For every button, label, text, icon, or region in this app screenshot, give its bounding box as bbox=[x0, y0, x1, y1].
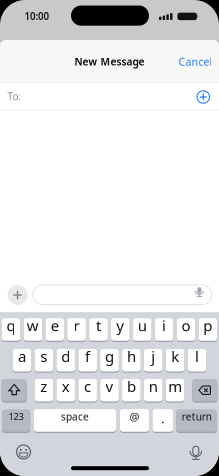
staticText: g bbox=[105, 346, 114, 366]
button[interactable]: b bbox=[120, 377, 143, 403]
staticText: e bbox=[51, 315, 59, 336]
staticText: t bbox=[96, 315, 101, 336]
staticText: Cancel bbox=[178, 54, 212, 69]
button[interactable]: return bbox=[174, 407, 219, 434]
staticText: y bbox=[116, 315, 124, 336]
button[interactable]: w bbox=[21, 316, 44, 343]
staticText: w bbox=[27, 315, 39, 336]
button[interactable]: v bbox=[98, 377, 121, 403]
staticText: return bbox=[182, 410, 212, 423]
staticText: f bbox=[85, 346, 90, 366]
staticText: h bbox=[127, 346, 136, 366]
staticText: New Message bbox=[74, 55, 144, 69]
button[interactable]: i bbox=[153, 316, 175, 343]
button[interactable]: Shift bbox=[0, 377, 29, 403]
staticText: 10:00 bbox=[24, 10, 49, 23]
button[interactable]: Apps bbox=[7, 284, 28, 305]
staticText: l bbox=[195, 346, 199, 366]
button[interactable]: y bbox=[109, 316, 132, 343]
button[interactable]: x bbox=[54, 377, 77, 403]
staticText: v bbox=[105, 376, 113, 396]
button[interactable]: t bbox=[87, 316, 110, 343]
button[interactable]: l bbox=[186, 347, 208, 374]
staticText: @ bbox=[129, 409, 139, 424]
staticText: j bbox=[151, 346, 155, 366]
staticText: p bbox=[203, 315, 212, 336]
button[interactable]: Delete bbox=[190, 377, 219, 403]
button[interactable]: Dictate bbox=[188, 444, 204, 460]
button[interactable]: z bbox=[33, 377, 55, 403]
staticText: o bbox=[181, 315, 190, 336]
staticText: q bbox=[6, 315, 15, 336]
button[interactable]: h bbox=[120, 347, 143, 374]
button[interactable]: f bbox=[76, 347, 99, 374]
button[interactable]: g bbox=[98, 347, 121, 374]
button[interactable]: p bbox=[197, 316, 219, 343]
button[interactable]: 123 bbox=[0, 407, 32, 434]
button[interactable]: Message field, dictate bbox=[33, 285, 212, 305]
button[interactable]: m bbox=[164, 377, 186, 403]
staticText: . bbox=[161, 410, 164, 427]
button[interactable]: e bbox=[43, 316, 66, 343]
button[interactable]: d bbox=[54, 347, 77, 374]
button[interactable]: space bbox=[32, 407, 118, 434]
staticText: space bbox=[61, 410, 89, 423]
staticText: u bbox=[138, 315, 147, 336]
button[interactable]: j bbox=[142, 347, 165, 374]
staticText: To: bbox=[7, 89, 21, 103]
staticText: r bbox=[74, 315, 80, 336]
button[interactable]: To bbox=[0, 83, 219, 109]
button[interactable]: . bbox=[150, 407, 175, 434]
button[interactable]: r bbox=[65, 316, 88, 343]
button[interactable]: c bbox=[76, 377, 99, 403]
staticText: d bbox=[61, 346, 70, 366]
staticText: 123 bbox=[9, 410, 24, 423]
button[interactable]: n bbox=[142, 377, 165, 403]
button[interactable]: @ bbox=[118, 407, 151, 434]
staticText: i bbox=[162, 315, 166, 336]
staticText: m bbox=[168, 376, 182, 396]
staticText: x bbox=[62, 376, 70, 396]
button[interactable]: u bbox=[131, 316, 153, 343]
staticText: b bbox=[127, 376, 136, 396]
button[interactable]: k bbox=[164, 347, 186, 374]
staticText: n bbox=[149, 376, 158, 396]
staticText: z bbox=[40, 376, 47, 396]
button[interactable]: Emoji bbox=[15, 443, 32, 460]
button[interactable]: a bbox=[11, 347, 33, 374]
button[interactable]: Cancel bbox=[178, 54, 212, 69]
button[interactable]: o bbox=[175, 316, 197, 343]
staticText: s bbox=[40, 346, 47, 366]
staticText: c bbox=[84, 376, 91, 396]
button[interactable]: Add Contact bbox=[195, 89, 211, 105]
button[interactable]: s bbox=[33, 347, 55, 374]
staticText: k bbox=[171, 346, 179, 366]
staticText: a bbox=[18, 346, 26, 366]
button[interactable]: q bbox=[0, 316, 22, 343]
